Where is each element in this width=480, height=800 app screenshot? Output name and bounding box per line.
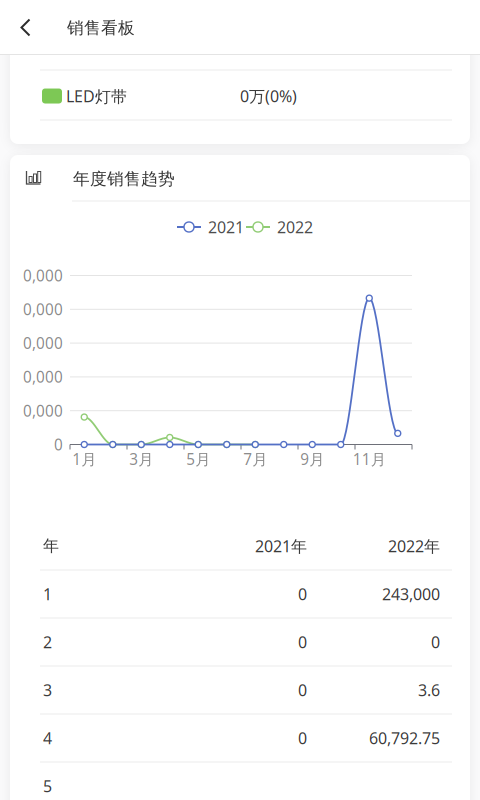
staticText: LED灯带 [66, 85, 127, 107]
staticText: 年度销售趋势 [73, 168, 175, 189]
staticText: 1 [43, 583, 52, 605]
staticText: 4 [43, 727, 52, 749]
staticText: 0 [431, 631, 440, 653]
staticText: 0,000 [23, 265, 63, 286]
staticText: 243,000 [382, 583, 440, 605]
staticText: 2021年 [255, 535, 307, 557]
staticText: 3.6 [418, 679, 440, 701]
staticText: 7月 [243, 449, 267, 469]
staticText: 0,000 [23, 299, 63, 320]
staticText: 2022 [277, 216, 313, 238]
staticText: 9月 [300, 449, 324, 469]
staticText: 0万(0%) [240, 85, 297, 107]
button[interactable]: 返回 [4, 6, 48, 50]
staticText: 2 [43, 631, 52, 653]
staticText: 0,000 [23, 366, 63, 387]
staticText: 3 [43, 679, 52, 701]
staticText: LED灯带 [66, 35, 127, 57]
staticText: 5月 [186, 449, 210, 469]
staticText: 销售看板 [67, 17, 135, 38]
staticText: 11月 [353, 449, 386, 469]
staticText: 0万(0%) [240, 35, 297, 57]
staticText: 3月 [129, 449, 153, 469]
staticText: 60,792.75 [369, 727, 440, 749]
staticText: 1月 [72, 449, 96, 469]
staticText: 0 [298, 679, 307, 701]
staticText: 0 [298, 583, 307, 605]
staticText: 0 [54, 434, 63, 455]
staticText: 0 [298, 631, 307, 653]
staticText: 年 [43, 536, 59, 556]
staticText: 0,000 [23, 400, 63, 421]
staticText: 0 [298, 727, 307, 749]
staticText: 5 [43, 775, 52, 797]
staticText: 2022年 [388, 535, 440, 557]
staticText: 2021 [208, 216, 244, 238]
staticText: 0,000 [23, 333, 63, 354]
